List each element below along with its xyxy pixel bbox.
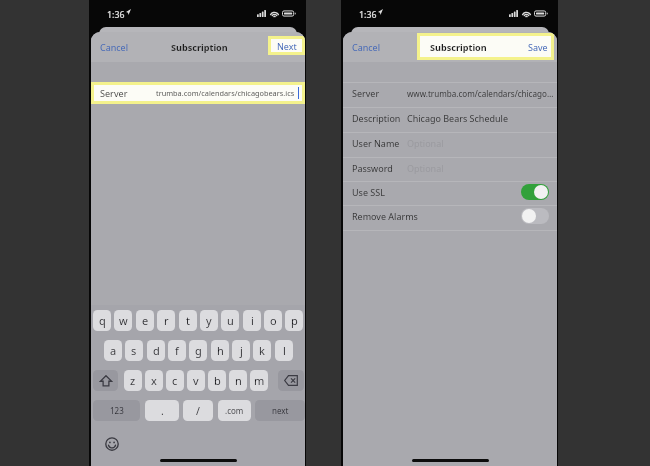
button[interactable]: c xyxy=(166,370,184,391)
staticText: e xyxy=(142,313,149,328)
staticText: 123 xyxy=(110,405,124,416)
button[interactable]: Save xyxy=(528,41,548,53)
staticText: m xyxy=(254,373,265,388)
staticText: y xyxy=(206,313,212,328)
button[interactable]: d xyxy=(147,340,165,361)
button[interactable]: z xyxy=(124,370,142,391)
staticText: Next xyxy=(277,40,297,52)
staticText: n xyxy=(235,373,242,388)
button[interactable]: Emoji keyboard xyxy=(105,437,119,451)
staticText: i xyxy=(251,313,254,328)
staticText: 1:36 xyxy=(359,9,377,21)
button[interactable]: .com xyxy=(218,400,251,421)
button[interactable]: x xyxy=(145,370,163,391)
button[interactable]: Remove Alarms xyxy=(343,206,557,230)
button[interactable]: Backspace xyxy=(278,370,304,391)
staticText: c xyxy=(172,373,178,388)
button[interactable]: Description xyxy=(343,108,557,132)
staticText: x xyxy=(151,373,157,388)
staticText: 1:36 xyxy=(107,9,125,21)
staticText: v xyxy=(193,373,199,388)
staticText: Remove Alarms xyxy=(352,210,418,222)
button[interactable]: Cancel xyxy=(352,41,381,53)
staticText: next xyxy=(272,405,289,416)
staticText: q xyxy=(99,313,106,328)
staticText: Server xyxy=(100,87,128,99)
button[interactable]: a xyxy=(104,340,122,361)
button[interactable]: Password xyxy=(343,158,557,182)
button[interactable]: v xyxy=(187,370,205,391)
button[interactable]: f xyxy=(168,340,186,361)
button[interactable]: / xyxy=(183,400,213,421)
button[interactable]: l xyxy=(275,340,293,361)
button[interactable]: u xyxy=(221,310,239,331)
button[interactable]: Next xyxy=(271,39,302,52)
button[interactable]: b xyxy=(208,370,226,391)
staticText: User Name xyxy=(352,137,400,149)
button[interactable]: Shift xyxy=(93,370,118,391)
staticText: t xyxy=(186,313,190,328)
staticText: trumba.com/calendars/chicagobears.ics xyxy=(156,88,295,98)
button[interactable]: . xyxy=(145,400,179,421)
staticText: f xyxy=(175,343,179,358)
staticText: Save xyxy=(528,41,548,53)
button[interactable]: Server xyxy=(343,83,557,107)
button[interactable]: i xyxy=(243,310,261,331)
button[interactable]: next xyxy=(255,400,305,421)
button[interactable]: Cancel xyxy=(100,41,129,53)
button[interactable]: j xyxy=(232,340,250,361)
staticText: Chicago Bears Schedule xyxy=(407,112,556,124)
staticText: l xyxy=(283,343,286,358)
staticText: Subscription xyxy=(430,41,487,53)
button[interactable]: t xyxy=(179,310,197,331)
button[interactable]: m xyxy=(250,370,268,391)
button[interactable]: p xyxy=(285,310,303,331)
staticText: .com xyxy=(225,405,244,416)
staticText: g xyxy=(195,343,202,358)
staticText: w xyxy=(119,313,128,328)
button[interactable]: s xyxy=(125,340,143,361)
staticText: Password xyxy=(352,162,393,174)
staticText: Cancel xyxy=(352,41,381,53)
staticText: / xyxy=(196,404,200,418)
staticText: www.trumba.com/calendars/chicagob... xyxy=(407,88,556,99)
button[interactable]: g xyxy=(189,340,207,361)
button[interactable]: Use SSL xyxy=(343,182,557,205)
staticText: a xyxy=(110,343,117,358)
staticText: b xyxy=(214,373,221,388)
button[interactable]: e xyxy=(136,310,154,331)
staticText: u xyxy=(227,313,234,328)
button[interactable]: User Name xyxy=(343,133,557,157)
staticText: r xyxy=(164,313,169,328)
staticText: h xyxy=(217,343,224,358)
staticText: s xyxy=(131,343,137,358)
staticText: d xyxy=(153,343,160,358)
staticText: Cancel xyxy=(100,41,129,53)
staticText: j xyxy=(240,343,243,358)
staticText: z xyxy=(130,373,136,388)
staticText: Server xyxy=(352,87,380,99)
staticText: Subscription xyxy=(171,41,228,53)
button[interactable]: o xyxy=(264,310,282,331)
button[interactable]: Server xyxy=(94,85,302,101)
button[interactable]: 123 xyxy=(93,400,140,421)
button[interactable]: r xyxy=(157,310,175,331)
button[interactable]: w xyxy=(114,310,132,331)
staticText: k xyxy=(259,343,265,358)
button[interactable]: q xyxy=(93,310,111,331)
staticText: . xyxy=(161,404,164,418)
staticText: p xyxy=(291,313,298,328)
staticText: Description xyxy=(352,112,401,124)
button[interactable]: h xyxy=(211,340,229,361)
button[interactable]: y xyxy=(200,310,218,331)
staticText: Use SSL xyxy=(352,186,385,198)
staticText: o xyxy=(270,313,277,328)
button[interactable]: n xyxy=(229,370,247,391)
button[interactable]: k xyxy=(253,340,271,361)
